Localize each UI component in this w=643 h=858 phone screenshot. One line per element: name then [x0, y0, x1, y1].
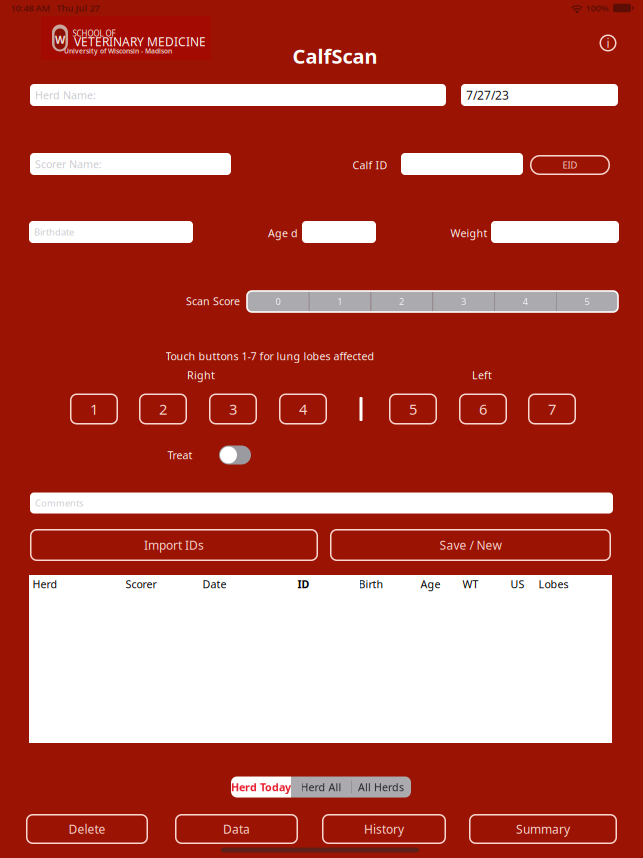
staticText: 2 — [159, 399, 167, 419]
button[interactable]: 1 — [70, 393, 118, 424]
button[interactable]: History — [322, 814, 446, 844]
button[interactable]: Treat — [219, 445, 251, 464]
staticText: ID — [297, 577, 309, 591]
staticText: i — [606, 35, 609, 51]
button[interactable]: 2 — [139, 393, 187, 424]
staticText: Herd — [32, 577, 57, 591]
staticText: Birthdate — [34, 226, 74, 238]
staticText: Scan Score — [186, 294, 240, 308]
staticText: 0 — [275, 295, 280, 308]
button[interactable]: EID — [530, 155, 610, 175]
button[interactable]: 5 — [556, 291, 618, 312]
staticText: Lobes — [538, 577, 568, 591]
staticText: Birth — [358, 577, 383, 591]
staticText: All Herds — [358, 780, 404, 794]
button[interactable]: 5 — [389, 393, 437, 424]
staticText: Left — [472, 368, 492, 382]
staticText: CalfScan — [292, 43, 377, 69]
button[interactable]: 4 — [279, 393, 327, 424]
staticText: WT — [462, 577, 478, 591]
staticText: Scorer — [125, 577, 156, 591]
staticText: History — [364, 821, 404, 837]
button[interactable]: Herd Today — [231, 776, 291, 797]
staticText: Treat — [167, 448, 192, 462]
button[interactable]: 7 — [528, 393, 576, 424]
staticText: 3 — [461, 295, 466, 308]
staticText: 1 — [90, 399, 98, 419]
staticText: 10:48 AM — [10, 2, 50, 14]
button[interactable]: 2 — [371, 291, 432, 312]
staticText: Delete — [68, 821, 105, 837]
button[interactable]: Data — [175, 814, 298, 844]
staticText: 5 — [409, 399, 417, 419]
button[interactable]: Save / New — [330, 529, 611, 561]
staticText: Date — [202, 577, 226, 591]
staticText: 5 — [584, 295, 589, 308]
button[interactable]: Summary — [469, 814, 617, 844]
staticText: Weight — [450, 226, 487, 240]
button[interactable]: Info — [597, 32, 619, 54]
staticText: Herd Name: — [35, 88, 96, 102]
staticText: Data — [223, 821, 250, 837]
button[interactable]: 1 — [309, 291, 371, 312]
staticText: Herd Today — [231, 780, 291, 794]
staticText: US — [510, 577, 524, 591]
staticText: 1 — [337, 295, 342, 308]
staticText: Calf ID — [352, 158, 387, 172]
button[interactable]: Import IDs — [30, 529, 318, 561]
staticText: 7/27/23 — [466, 87, 509, 103]
staticText: Thu Jul 27 — [56, 2, 99, 14]
staticText: EID — [562, 159, 577, 171]
staticText: Touch buttons 1-7 for lung lobes affecte… — [165, 349, 374, 363]
staticText: Summary — [516, 821, 570, 837]
staticText: 2 — [399, 295, 404, 308]
button[interactable]: 0 — [247, 291, 309, 312]
staticText: SCHOOL OF — [72, 28, 115, 39]
staticText: 7 — [548, 399, 556, 419]
button[interactable]: 4 — [494, 291, 556, 312]
staticText: 4 — [299, 399, 307, 419]
staticText: Save / New — [439, 537, 501, 553]
staticText: W — [55, 32, 65, 47]
staticText: University of Wisconsin - Madison — [64, 47, 172, 55]
staticText: 100% — [585, 2, 608, 14]
staticText: Herd All — [300, 780, 341, 794]
staticText: Scorer Name: — [35, 157, 102, 171]
staticText: 3 — [229, 399, 237, 419]
button[interactable]: 3 — [209, 393, 257, 424]
button[interactable]: All Herds — [351, 776, 411, 797]
button[interactable]: 6 — [459, 393, 507, 424]
staticText: Comments — [35, 497, 83, 509]
staticText: VETERINARY MEDICINE — [74, 33, 206, 49]
staticText: Right — [187, 368, 215, 382]
staticText: Age — [420, 577, 440, 591]
button[interactable]: Herd All — [291, 776, 351, 797]
staticText: 4 — [523, 295, 528, 308]
staticText: Import IDs — [144, 537, 204, 553]
button[interactable]: 3 — [432, 291, 494, 312]
button[interactable]: Delete — [26, 814, 148, 844]
staticText: Age d — [268, 226, 298, 240]
staticText: 6 — [479, 399, 487, 419]
